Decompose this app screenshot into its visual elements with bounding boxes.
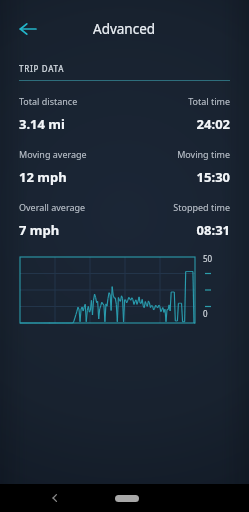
- staticText: Advanced: [93, 20, 156, 38]
- button[interactable]: Back: [42, 485, 68, 511]
- staticText: 7 mph: [19, 221, 196, 239]
- staticText: Stopped time: [173, 201, 230, 213]
- button[interactable]: Moving average: [0, 148, 249, 186]
- button[interactable]: Total distance: [0, 95, 249, 133]
- staticText: Total time: [188, 95, 230, 107]
- staticText: Overall average: [19, 201, 173, 213]
- staticText: Moving time: [177, 148, 230, 160]
- staticText: 0: [203, 308, 208, 319]
- staticText: 12 mph: [19, 168, 196, 186]
- staticText: 3.14 mi: [19, 115, 196, 133]
- staticText: Moving average: [19, 148, 177, 160]
- button[interactable]: Overall average: [0, 201, 249, 239]
- staticText: TRIP DATA: [19, 63, 65, 74]
- staticText: 50: [203, 253, 213, 264]
- button[interactable]: Back: [8, 9, 48, 49]
- staticText: 15:30: [196, 168, 230, 186]
- staticText: 24:02: [196, 115, 230, 133]
- staticText: Total distance: [19, 95, 188, 107]
- staticText: 08:31: [196, 221, 230, 239]
- button[interactable]: Home: [115, 495, 139, 502]
